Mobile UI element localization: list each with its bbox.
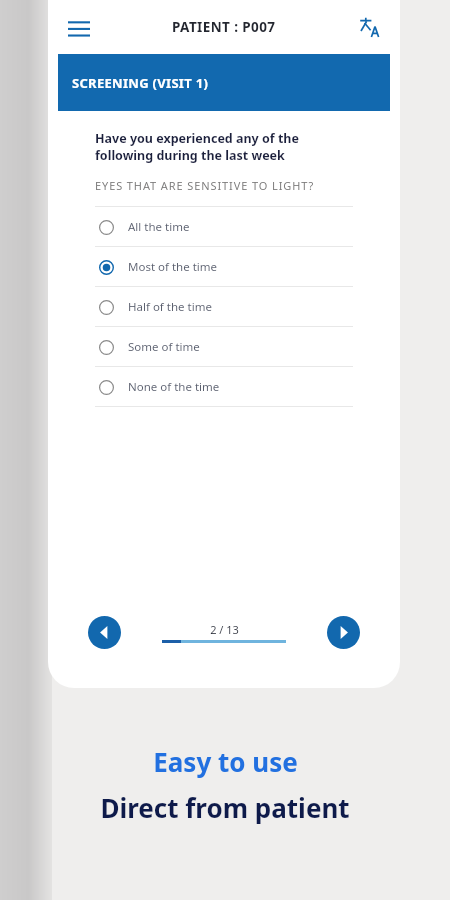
staticText: Some of time bbox=[128, 339, 200, 355]
staticText: Easy to use bbox=[153, 744, 298, 779]
button[interactable]: Some of time bbox=[95, 327, 353, 366]
staticText: Most of the time bbox=[128, 259, 218, 275]
button[interactable]: Menu bbox=[62, 10, 96, 44]
staticText: Half of the time bbox=[128, 299, 212, 315]
button[interactable]: Most of the time bbox=[95, 247, 353, 286]
staticText: PATIENT : P007 bbox=[172, 18, 276, 36]
button[interactable]: None of the time bbox=[95, 367, 353, 406]
staticText: Have you experienced any of the followin… bbox=[95, 130, 299, 163]
button[interactable]: Next question bbox=[327, 616, 360, 649]
button[interactable]: All the time bbox=[95, 207, 353, 246]
staticText: EYES THAT ARE SENSITIVE TO LIGHT? bbox=[95, 178, 315, 193]
staticText: SCREENING (VISIT 1) bbox=[72, 74, 209, 92]
button[interactable]: Previous question bbox=[88, 616, 121, 649]
staticText: 2 / 13 bbox=[210, 622, 239, 637]
staticText: None of the time bbox=[128, 379, 220, 395]
staticText: All the time bbox=[128, 219, 190, 235]
button[interactable]: Translate bbox=[352, 10, 386, 44]
button[interactable]: Half of the time bbox=[95, 287, 353, 326]
staticText: Direct from patient bbox=[100, 790, 350, 825]
